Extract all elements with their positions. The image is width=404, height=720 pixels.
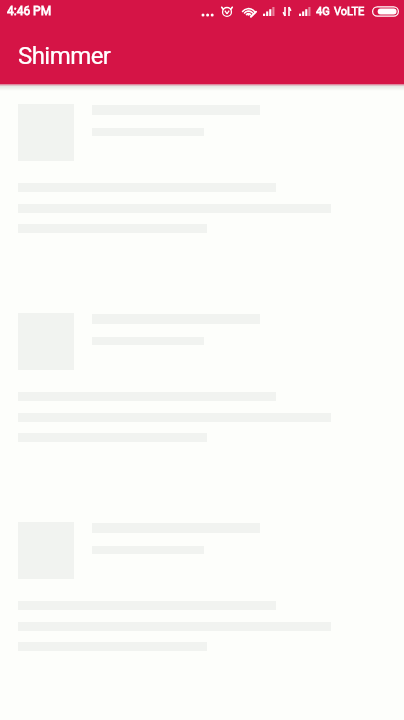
other: Mobile signal	[263, 7, 275, 16]
button[interactable]	[0, 313, 404, 522]
other: Wi-Fi	[241, 6, 256, 17]
other: Data transfer	[283, 6, 291, 17]
staticText: 4:46 PM	[7, 4, 52, 18]
staticText: 4G	[316, 5, 330, 18]
other: More status icons	[201, 4, 212, 18]
button[interactable]	[0, 104, 404, 313]
other: Mobile signal	[299, 7, 311, 16]
staticText: VoLTE	[334, 5, 365, 18]
other: Battery	[372, 6, 399, 17]
other: Alarm set	[221, 5, 233, 17]
button[interactable]	[0, 522, 404, 720]
staticText: Shimmer	[18, 42, 111, 70]
